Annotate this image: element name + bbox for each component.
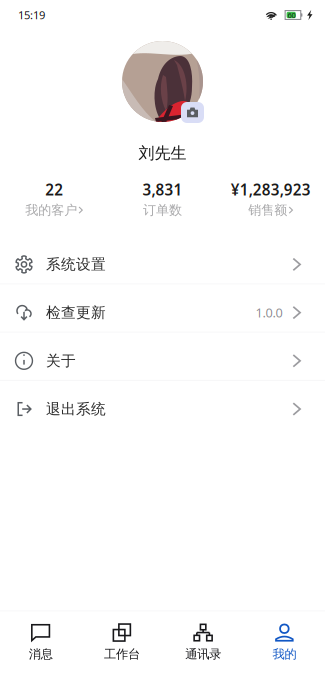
button[interactable]: 消息 [0,611,81,673]
staticText: 我的客户 [25,202,77,218]
button[interactable]: 22 [0,179,108,218]
button[interactable]: 通讯录 [162,611,244,673]
button[interactable]: 退出系统 [0,381,325,428]
staticText: 消息 [29,646,53,662]
button[interactable]: 检查更新 [0,284,325,332]
staticText: 通讯录 [185,646,221,662]
staticText: 我的 [272,646,296,662]
staticText: 退出系统 [46,400,106,418]
staticText: 3,831 [142,179,182,200]
staticText: 关于 [46,352,76,370]
staticText: ¥1,283,923 [231,179,311,200]
staticText: 22 [45,179,63,200]
staticText: 60 [287,10,295,20]
staticText: 1.0.0 [255,304,282,321]
staticText: 刘先生 [138,143,186,163]
staticText: 销售额 [248,202,287,218]
button[interactable]: ¥1,283,923 [217,179,325,218]
button[interactable]: 我的 [244,611,325,673]
staticText: 系统设置 [46,255,106,274]
button[interactable]: 关于 [0,333,325,380]
button[interactable]: 3,831 [108,179,217,218]
staticText: 15:19 [18,7,45,23]
staticText: 检查更新 [46,303,106,322]
staticText: 工作台 [104,646,140,662]
button[interactable]: Change profile photo [181,102,204,123]
button[interactable]: 工作台 [81,611,162,673]
button[interactable]: 系统设置 [0,236,325,283]
staticText: 订单数 [143,202,182,218]
